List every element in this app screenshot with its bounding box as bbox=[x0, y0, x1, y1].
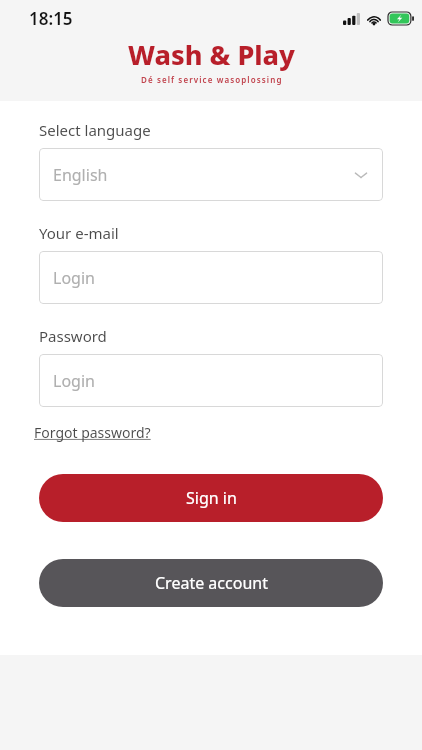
staticText: Dé self service wasoplossing bbox=[141, 74, 283, 85]
staticText: Login bbox=[53, 267, 95, 289]
staticText: Password bbox=[39, 326, 107, 346]
staticText: Your e-mail bbox=[39, 223, 119, 243]
staticText: Forgot password? bbox=[34, 423, 151, 442]
button[interactable]: Login bbox=[39, 251, 383, 304]
button[interactable]: Create account bbox=[39, 559, 383, 607]
other: Open language list bbox=[353, 167, 369, 183]
staticText: Sign in bbox=[186, 487, 237, 509]
button[interactable]: English bbox=[39, 148, 383, 201]
button[interactable]: Login bbox=[39, 354, 383, 407]
staticText: Select language bbox=[39, 120, 151, 140]
button[interactable]: Forgot password? bbox=[32, 421, 153, 444]
staticText: English bbox=[53, 164, 108, 186]
staticText: Create account bbox=[155, 572, 268, 594]
button[interactable]: Sign in bbox=[39, 474, 383, 522]
staticText: Login bbox=[53, 370, 95, 392]
staticText: Wash & Play bbox=[128, 36, 295, 73]
staticText: 18:15 bbox=[29, 7, 73, 30]
